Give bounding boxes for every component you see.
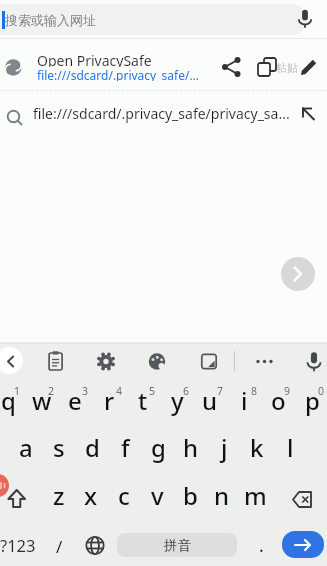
button[interactable] [250,346,280,376]
staticText: k [250,431,264,464]
staticText: / [56,535,63,558]
staticText: a [19,431,33,464]
staticText: 1 [14,384,21,396]
button[interactable]: p [294,378,327,422]
button[interactable] [194,346,224,376]
staticText: h [183,431,199,464]
button[interactable] [0,91,327,138]
staticText: c [118,479,130,512]
button[interactable]: g [140,425,176,469]
button[interactable] [0,4,307,35]
button[interactable]: ?123 [0,525,41,565]
button[interactable]: b [172,473,208,517]
button[interactable]: t [125,378,161,422]
button[interactable]: q [0,378,26,422]
staticText: 9 [284,384,291,396]
staticText: g [151,431,166,464]
staticText: 2 [48,384,55,396]
staticText: v [151,479,164,512]
button[interactable]: l [272,425,308,469]
staticText: 0 [318,384,325,396]
button[interactable]: s [41,425,77,469]
staticText: j [221,431,228,464]
staticText: y [171,384,184,417]
button[interactable]: i [226,378,262,422]
button[interactable]: / [39,526,79,566]
staticText: p [305,384,320,417]
staticText: Open PrivacySafe [37,51,152,67]
staticText: 8 [251,384,258,396]
button[interactable] [0,39,327,90]
button[interactable]: r [91,378,127,422]
staticText: s [53,431,65,464]
button[interactable]: d [74,425,110,469]
button[interactable]: z [41,473,77,517]
button[interactable]: f [107,425,143,469]
button[interactable]: n [204,473,240,517]
button[interactable] [41,346,71,376]
staticText: 粘贴 [276,61,298,75]
button[interactable]: h [173,425,209,469]
button[interactable] [91,346,121,376]
button[interactable]: x [73,473,109,517]
staticText: 6 [183,384,190,396]
staticText: 4 [116,384,123,396]
button[interactable] [0,478,40,520]
staticText: w [32,384,52,417]
staticText: e [68,384,82,417]
staticText: r [104,384,115,417]
button[interactable]: e [57,378,93,422]
staticText: f [121,431,130,464]
button[interactable]: m [237,473,273,517]
staticText: . [259,533,264,558]
staticText: u [202,384,218,417]
staticText: l [287,431,294,464]
staticText: n [214,479,230,512]
button[interactable]: 拼音 [117,533,237,557]
button[interactable] [78,528,112,562]
button[interactable] [285,478,325,520]
button[interactable]: o [260,378,296,422]
button[interactable] [281,257,315,291]
button[interactable]: . [241,525,281,565]
staticText: 搜索或输入网址 [5,12,96,28]
staticText: t [138,384,148,417]
button[interactable] [282,531,324,558]
staticText: o [271,384,286,417]
button[interactable]: c [106,473,142,517]
button[interactable] [142,346,172,376]
button[interactable]: u [192,378,228,422]
staticText: 7 [217,384,224,396]
staticText: 5 [149,384,156,396]
staticText: file:///sdcard/.privacy_safe/... [37,67,200,81]
staticText: m [244,479,267,512]
staticText: b [183,479,198,512]
staticText: d [85,431,100,464]
staticText: z [53,479,65,512]
staticText: ?123 [0,534,36,556]
button[interactable]: v [139,473,175,517]
staticText: i [241,384,248,417]
staticText: 拼音 [164,537,191,554]
button[interactable] [0,347,23,374]
button[interactable]: a [8,425,44,469]
staticText: x [84,479,98,512]
button[interactable]: k [239,425,275,469]
staticText: q [1,384,16,417]
button[interactable]: j [206,425,242,469]
staticText: file:///sdcard/.privacy_safe/privacy_sa.… [33,104,290,123]
button[interactable] [299,346,327,376]
staticText: 3 [82,384,89,396]
button[interactable]: y [159,378,195,422]
button[interactable]: w [24,378,60,422]
